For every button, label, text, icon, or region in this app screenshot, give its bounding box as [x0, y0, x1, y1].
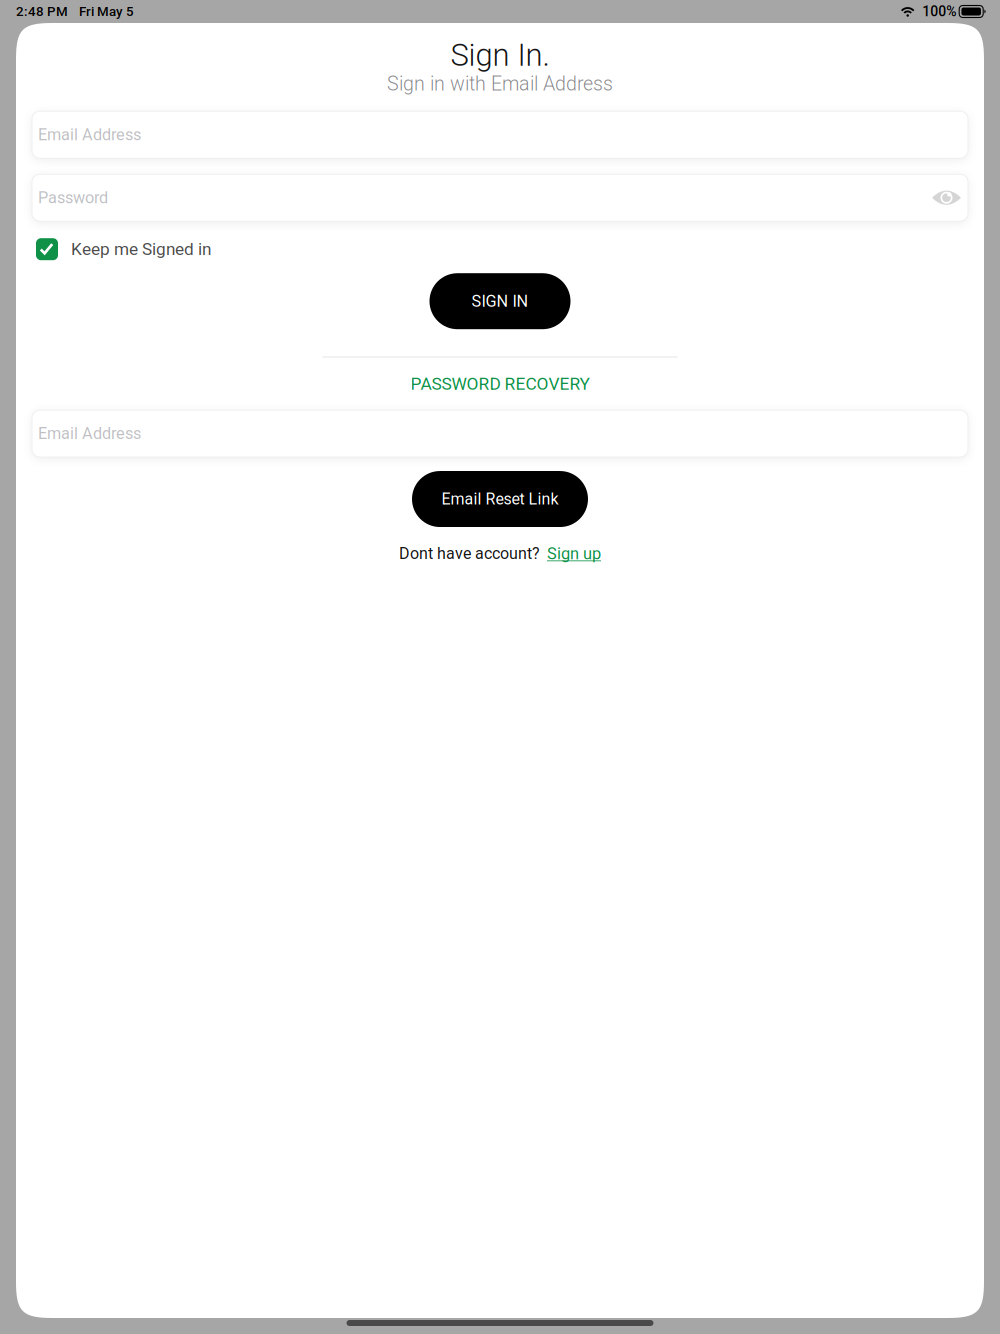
staticText: Email Reset Link	[441, 490, 558, 508]
staticText: 2:48 PM	[16, 4, 68, 19]
button[interactable]: Sign up	[540, 544, 601, 563]
staticText: Email Address	[38, 125, 141, 144]
button[interactable]: SIGN IN	[429, 273, 570, 329]
staticText: SIGN IN	[471, 292, 528, 311]
button[interactable]: Keep me Signed in	[32, 236, 211, 262]
staticText: Dont have account?	[399, 544, 540, 563]
button[interactable]: Email Reset Link	[412, 471, 588, 527]
staticText: Sign In.	[450, 37, 549, 73]
staticText: PASSWORD RECOVERY	[410, 374, 589, 394]
staticText: Sign in with Email Address	[387, 72, 613, 95]
staticText: Fri May 5	[79, 4, 134, 19]
staticText: 100%	[922, 3, 956, 20]
staticText: Sign up	[547, 544, 601, 563]
staticText: Email Address	[38, 424, 141, 443]
button[interactable]: Show password	[920, 180, 961, 216]
staticText: Keep me Signed in	[71, 239, 211, 259]
staticText: Password	[38, 188, 108, 207]
